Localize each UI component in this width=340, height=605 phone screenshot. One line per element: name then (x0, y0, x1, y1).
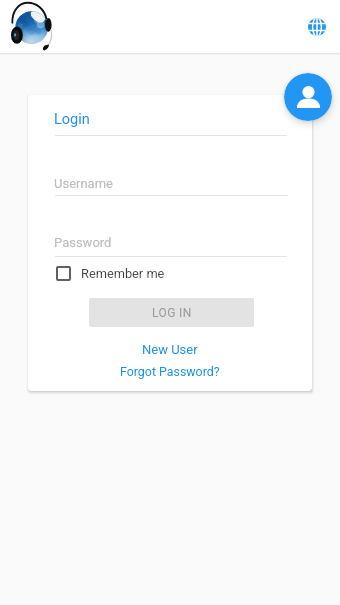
staticText: Login (54, 111, 90, 128)
staticText: Forgot Password? (120, 364, 220, 379)
staticText: Password (54, 235, 112, 250)
button[interactable]: Account (284, 73, 332, 121)
staticText: LOG IN (152, 306, 192, 320)
button[interactable]: Remember me (56, 266, 165, 281)
staticText: New User (142, 342, 198, 357)
button[interactable]: Forgot Password? (28, 362, 312, 381)
staticText: Username (54, 176, 113, 191)
button[interactable]: New User (28, 340, 312, 359)
button[interactable]: Language (301, 11, 333, 43)
staticText: Remember me (81, 266, 165, 281)
button[interactable]: LOG IN (89, 298, 254, 327)
